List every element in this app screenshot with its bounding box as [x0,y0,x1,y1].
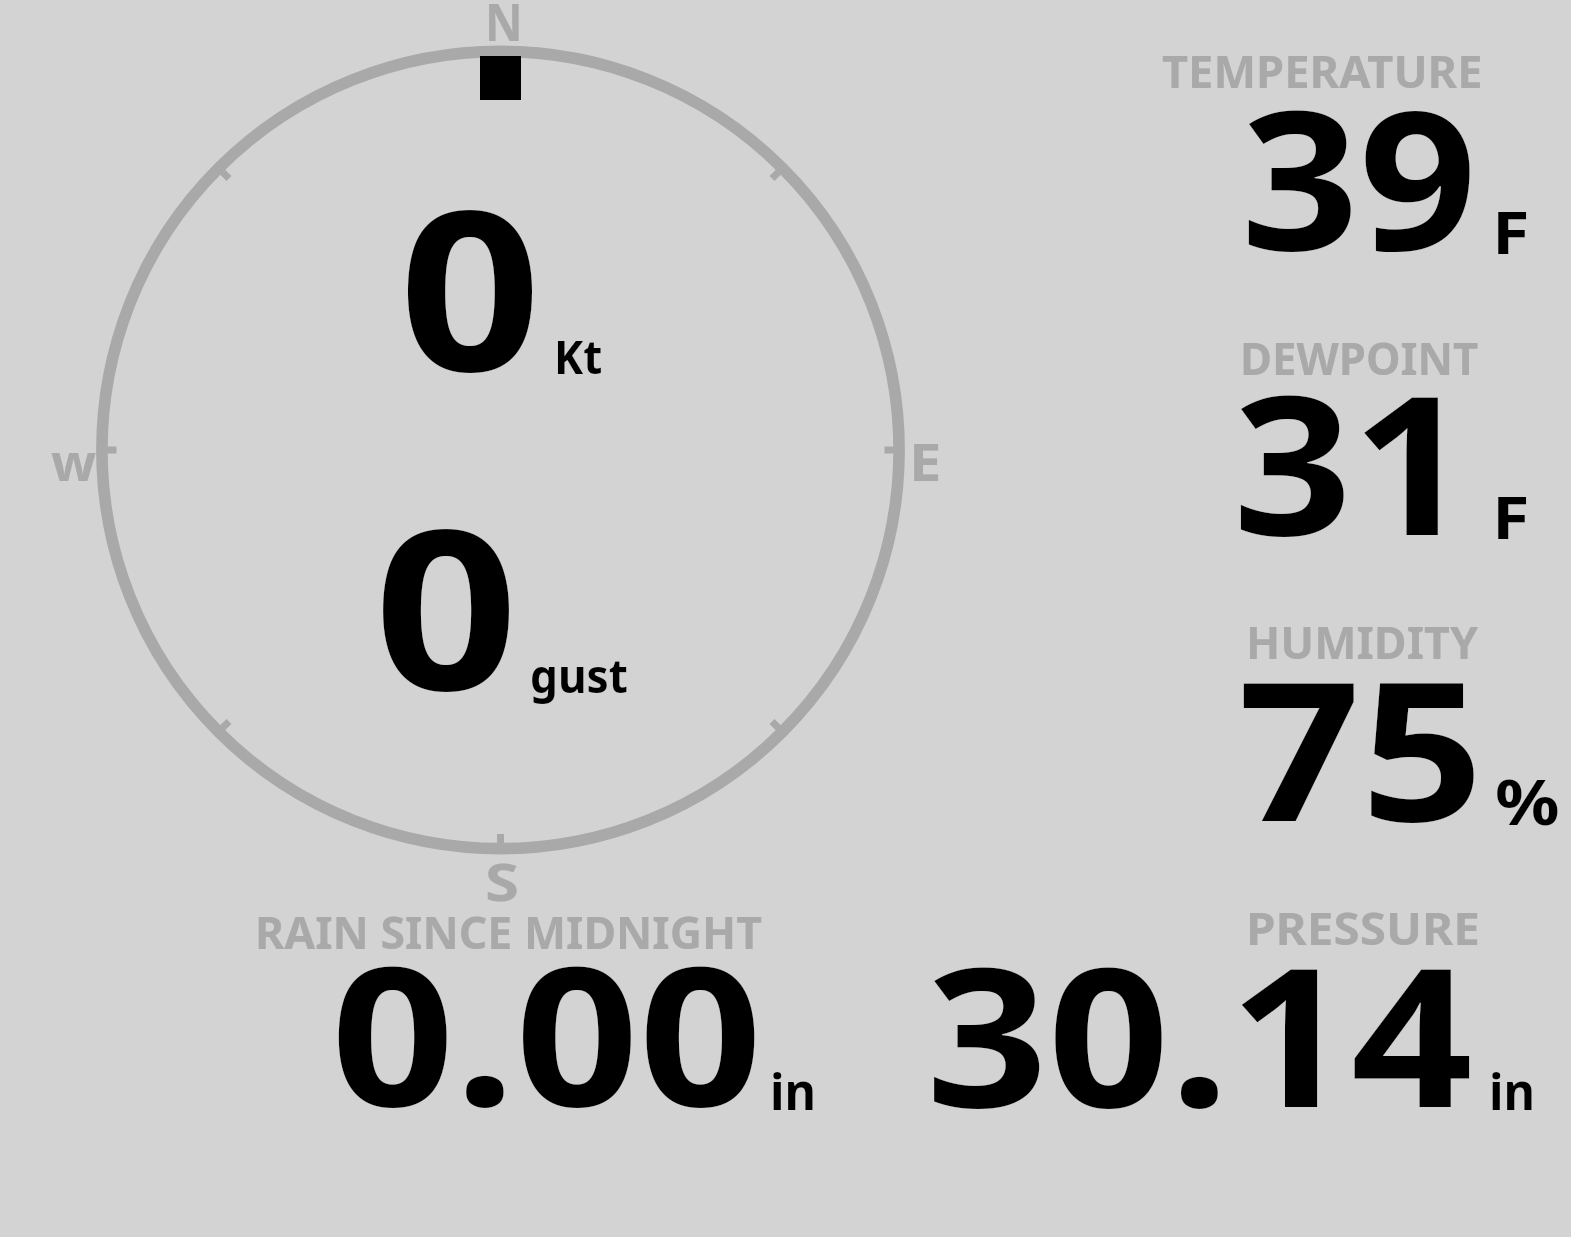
staticText: 0 [374,454,519,755]
staticText: % [1495,757,1560,843]
staticText: in [1489,1057,1536,1125]
staticText: DEWPOINT [1240,326,1478,388]
staticText: 75 [1238,615,1483,878]
staticText: S [485,845,519,917]
staticText: 39 [1241,44,1477,307]
staticText: in [770,1057,817,1125]
staticText: 0.00 [331,900,763,1163]
staticText: TEMPERATURE [1162,39,1483,101]
staticText: gust [530,644,629,707]
staticText: RAIN SINCE MIDNIGHT [255,900,762,962]
staticText: 30.14 [926,901,1473,1164]
staticText: 0 [399,135,542,436]
staticText: F [1492,476,1530,556]
staticText: N [485,0,523,57]
staticText: w [51,425,96,497]
button[interactable]: Pressure 30.14 inches [900,900,1550,1120]
button[interactable]: Dewpoint 31 degrees Fahrenheit [1150,325,1571,555]
button[interactable]: Rain since midnight 0.00 inches [230,900,830,1120]
staticText: PRESSURE [1246,896,1480,958]
button[interactable]: Humidity 75 percent [1150,610,1571,840]
staticText: E [909,425,942,497]
staticText: 31 [1233,329,1471,592]
staticText: Kt [554,325,603,388]
staticText: HUMIDITY [1246,610,1478,672]
button[interactable]: Wind compass, 0 knots from north [94,0,906,910]
button[interactable]: Temperature 39 degrees Fahrenheit [1150,40,1571,270]
staticText: F [1492,191,1530,271]
